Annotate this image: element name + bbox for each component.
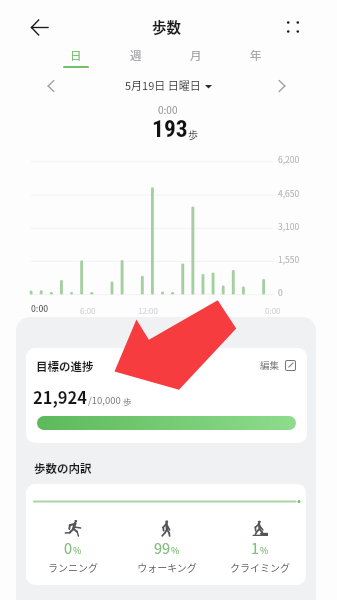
- staticText: 6,200: [278, 153, 300, 165]
- staticText: 21,924: [33, 385, 88, 409]
- staticText: /10,000: [88, 393, 121, 407]
- staticText: 0: [278, 286, 283, 298]
- button[interactable]: 週: [106, 44, 166, 70]
- button[interactable]: 月: [166, 44, 226, 70]
- staticText: 目標の進捗: [36, 358, 94, 375]
- staticText: 月: [190, 47, 202, 64]
- staticText: 193: [152, 115, 188, 143]
- staticText: 5月19日 日曜日: [125, 77, 201, 93]
- button[interactable]: 年: [226, 44, 286, 70]
- button[interactable]: 5月19日 日曜日: [125, 77, 212, 93]
- staticText: 年: [250, 47, 262, 64]
- staticText: 0: [64, 537, 73, 558]
- staticText: 1,550: [278, 253, 300, 265]
- staticText: 歩数: [152, 16, 181, 37]
- staticText: ウォーキング: [137, 560, 197, 574]
- button[interactable]: More options: [277, 11, 309, 43]
- staticText: 3,100: [278, 220, 300, 232]
- staticText: %: [260, 544, 269, 557]
- button[interactable]: Previous day: [36, 71, 65, 100]
- staticText: クライミング: [230, 560, 290, 574]
- button[interactable]: Next day: [267, 71, 296, 100]
- staticText: 歩: [121, 395, 132, 407]
- staticText: %: [73, 544, 82, 557]
- staticText: 12:00: [138, 305, 158, 317]
- button[interactable]: Back: [22, 10, 56, 44]
- staticText: 歩数の内訳: [34, 460, 92, 477]
- staticText: 0:00: [158, 102, 178, 116]
- button[interactable]: 1: [213, 520, 306, 572]
- staticText: 歩: [188, 127, 198, 141]
- staticText: 日: [70, 47, 82, 64]
- staticText: ランニング: [48, 560, 98, 574]
- staticText: 6:00: [80, 305, 96, 317]
- staticText: 99: [154, 537, 171, 558]
- staticText: 0:00: [31, 302, 49, 314]
- staticText: 編集: [260, 358, 280, 372]
- button[interactable]: 99: [120, 520, 213, 572]
- staticText: 4,650: [278, 187, 300, 199]
- button[interactable]: 編集: [260, 357, 296, 373]
- staticText: 0:00: [265, 305, 281, 317]
- button[interactable]: 目標の進捗: [26, 348, 307, 443]
- button[interactable]: 日: [46, 44, 106, 70]
- staticText: %: [171, 544, 180, 557]
- button[interactable]: 0: [26, 520, 120, 572]
- staticText: 1: [251, 537, 260, 558]
- staticText: 週: [130, 47, 142, 64]
